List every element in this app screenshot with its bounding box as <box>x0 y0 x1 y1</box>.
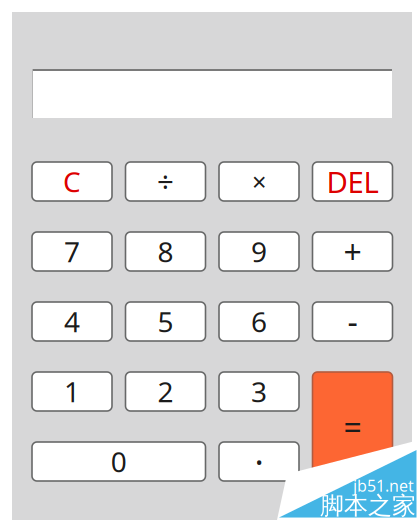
button[interactable]: C <box>32 162 112 201</box>
staticText: 7 <box>64 233 80 270</box>
staticText: + <box>343 230 361 273</box>
button[interactable]: = <box>312 372 392 481</box>
staticText: · <box>254 438 263 484</box>
button[interactable]: 8 <box>125 232 205 271</box>
staticText: 2 <box>157 373 173 410</box>
button[interactable]: 2 <box>125 372 205 411</box>
staticText: C <box>63 163 81 200</box>
button[interactable]: 4 <box>32 302 112 341</box>
staticText: ÷ <box>157 162 174 201</box>
staticText: - <box>347 300 357 343</box>
button[interactable]: · <box>219 442 299 481</box>
button[interactable]: × <box>219 162 299 201</box>
staticText: 0 <box>111 443 127 480</box>
button[interactable]: 5 <box>125 302 205 341</box>
button[interactable]: 9 <box>219 232 299 271</box>
button[interactable]: - <box>312 302 392 341</box>
button[interactable]: 1 <box>32 372 112 411</box>
staticText: 脚本之家 <box>320 491 416 520</box>
button[interactable]: DEL <box>312 162 392 201</box>
button[interactable]: 0 <box>32 442 205 481</box>
staticText: 3 <box>251 373 267 410</box>
button[interactable]: 6 <box>219 302 299 341</box>
staticText: = <box>343 405 361 448</box>
button[interactable]: 7 <box>32 232 112 271</box>
staticText: 1 <box>64 373 80 410</box>
staticText: × <box>252 165 266 198</box>
button[interactable]: ÷ <box>125 162 205 201</box>
staticText: DEL <box>326 162 378 201</box>
button[interactable]: + <box>312 232 392 271</box>
staticText: 6 <box>251 303 267 340</box>
staticText: 8 <box>157 233 173 270</box>
staticText: jb51.net <box>353 475 414 496</box>
staticText: 9 <box>251 233 267 270</box>
staticText: 5 <box>157 303 173 340</box>
staticText: 4 <box>64 303 80 340</box>
button[interactable]: 3 <box>219 372 299 411</box>
